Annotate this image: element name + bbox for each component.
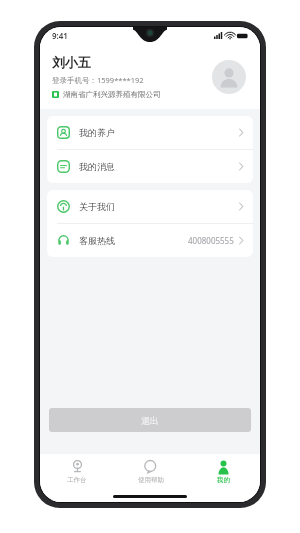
staticText: 工作台 [67, 476, 87, 484]
button[interactable]: 使用帮助 [114, 454, 187, 490]
staticText: 客服热线 [79, 235, 115, 246]
staticText: 4008005555 [188, 235, 234, 246]
staticText: 登录手机号：1599****192 [52, 75, 144, 85]
staticText: 我的消息 [79, 161, 115, 172]
button[interactable]: 退出 [49, 408, 251, 432]
staticText: 我的 [217, 476, 230, 484]
button[interactable]: 我的消息 [47, 150, 253, 183]
staticText: 我的养户 [79, 127, 115, 138]
staticText: 刘小五 [52, 54, 91, 70]
other: 我的 [217, 460, 230, 473]
staticText: 使用帮助 [138, 476, 164, 484]
other: Profile avatar [212, 60, 246, 94]
staticText: 关于我们 [79, 201, 115, 212]
staticText: 退出 [141, 415, 159, 426]
other: 使用帮助 [144, 460, 157, 473]
button[interactable]: 我的 [187, 454, 260, 490]
staticText: 9:41 [52, 30, 68, 41]
button[interactable]: 客服热线 [47, 224, 253, 257]
button[interactable]: 我的养户 [47, 116, 253, 149]
button[interactable]: 工作台 [40, 454, 114, 490]
button[interactable]: 关于我们 [47, 190, 253, 223]
staticText: 湖南省广利兴源养殖有限公司 [63, 90, 161, 99]
other: 工作台 [71, 460, 84, 473]
